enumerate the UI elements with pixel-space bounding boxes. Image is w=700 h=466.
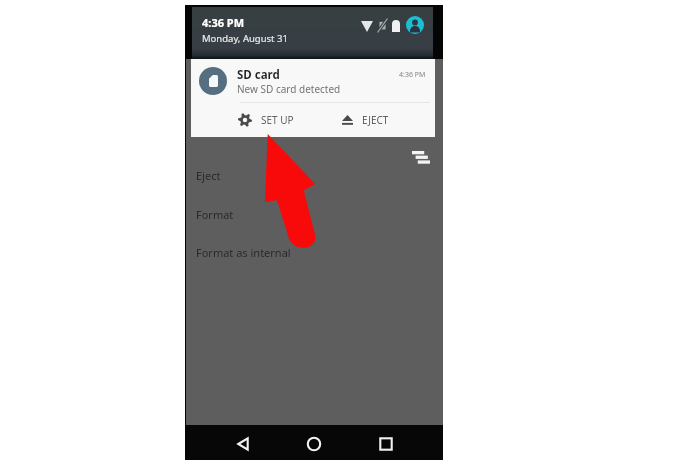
button[interactable]: SET UP [233, 106, 299, 134]
staticText: Format [196, 207, 234, 222]
button[interactable]: Sort [408, 146, 434, 168]
staticText: Format as internal [196, 245, 291, 260]
button[interactable]: Recent apps [371, 429, 400, 458]
staticText: Monday, August 31 [202, 32, 288, 45]
staticText: Eject [196, 168, 221, 183]
button[interactable]: Home [299, 429, 328, 458]
staticText: SET UP [261, 113, 294, 127]
staticText: SD card [237, 67, 280, 83]
staticText: 4:36 PM [202, 15, 245, 30]
button[interactable]: Back [228, 429, 257, 458]
button[interactable]: Format as internal [186, 239, 443, 266]
button[interactable]: Eject [186, 162, 443, 189]
button[interactable]: EJECT [337, 106, 399, 134]
staticText: 4:36 PM [399, 70, 426, 80]
staticText: EJECT [362, 113, 389, 127]
button[interactable]: User profile [406, 16, 424, 34]
button[interactable]: Format [186, 201, 443, 228]
staticText: New SD card detected [237, 82, 341, 96]
